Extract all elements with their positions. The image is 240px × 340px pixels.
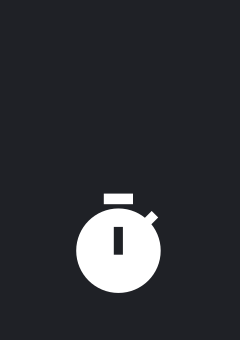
button[interactable]: Stopwatch bbox=[0, 0, 240, 340]
